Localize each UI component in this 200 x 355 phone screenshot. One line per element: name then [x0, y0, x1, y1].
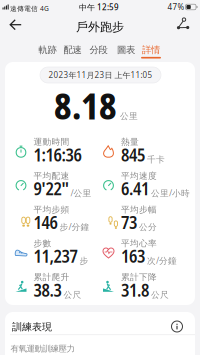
- staticText: 平均心率: [121, 238, 157, 249]
- staticText: 運動時間: [33, 136, 69, 147]
- staticText: 845: [121, 143, 145, 166]
- staticText: 平均步頻: [33, 204, 69, 215]
- staticText: 平均步幅: [121, 204, 157, 215]
- staticText: 38.3: [33, 278, 61, 302]
- staticText: 9'22": [33, 177, 68, 200]
- staticText: 次/分鐘: [147, 255, 177, 266]
- staticText: 步/分鐘: [59, 221, 89, 233]
- button[interactable]: 圖表: [114, 40, 138, 60]
- button[interactable]: 分享: [171, 12, 195, 34]
- staticText: 6.41: [121, 177, 149, 200]
- staticText: 公尺: [63, 289, 81, 300]
- staticText: 步數: [33, 238, 51, 249]
- staticText: 訓練表現: [12, 320, 52, 333]
- staticText: 分段: [89, 44, 107, 56]
- button[interactable]: 配速: [60, 40, 84, 60]
- staticText: 公尺: [151, 289, 169, 300]
- staticText: 2023年11月23日 上午11:05: [48, 70, 152, 80]
- staticText: 146: [33, 210, 57, 234]
- staticText: 163: [121, 244, 145, 268]
- staticText: 遠傳電信 4G: [10, 4, 49, 13]
- staticText: 47%: [167, 2, 184, 12]
- staticText: 公里/小時: [151, 187, 190, 199]
- staticText: /公里: [70, 187, 91, 199]
- staticText: 千卡: [147, 154, 165, 165]
- staticText: 軌跡: [38, 44, 56, 56]
- staticText: 73: [121, 210, 137, 234]
- staticText: 平均速度: [121, 170, 157, 181]
- button[interactable]: 詳情: [139, 40, 163, 60]
- staticText: 11,237: [33, 244, 77, 268]
- staticText: 戶外跑步: [76, 20, 124, 34]
- staticText: 1:16:36: [33, 143, 81, 166]
- staticText: 累計爬升: [33, 272, 69, 283]
- button[interactable]: 返回: [3, 15, 28, 35]
- staticText: 配速: [63, 44, 81, 56]
- staticText: 圖表: [117, 44, 135, 56]
- staticText: 公里: [120, 111, 138, 122]
- staticText: 有氧運動訓練壓力: [10, 343, 74, 354]
- button[interactable]: 軌跡: [35, 40, 59, 60]
- staticText: 詳情: [142, 44, 160, 56]
- staticText: 公分: [139, 222, 157, 233]
- staticText: 熱量: [121, 136, 139, 147]
- staticText: 31.8: [121, 278, 149, 302]
- staticText: 平均配速: [33, 170, 69, 181]
- staticText: 8.18: [54, 82, 117, 130]
- staticText: 累計下降: [121, 272, 157, 283]
- staticText: 步: [79, 255, 88, 266]
- staticText: 中午 12:59: [79, 2, 119, 12]
- button[interactable]: 2023年11月23日 上午11:05: [40, 67, 161, 83]
- button[interactable]: 分段: [86, 40, 110, 60]
- button[interactable]: 訓練表現說明: [169, 319, 182, 332]
